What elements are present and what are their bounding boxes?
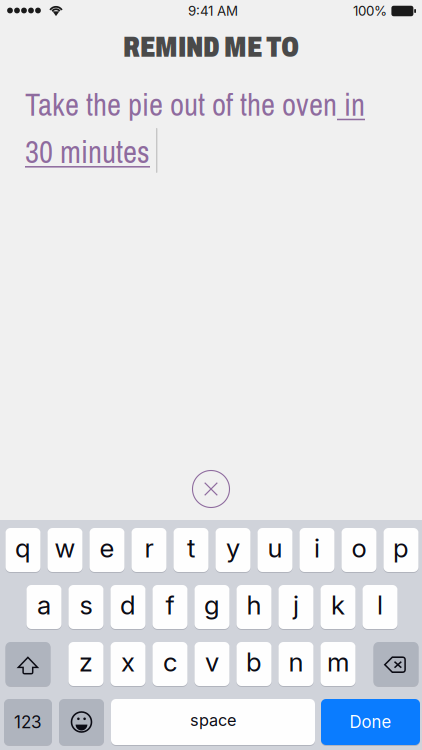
button[interactable]: Numbers xyxy=(4,699,52,745)
button[interactable]: q xyxy=(5,528,40,572)
button[interactable]: u xyxy=(257,528,292,572)
button[interactable]: g xyxy=(194,585,229,629)
staticText: m xyxy=(327,646,349,678)
button[interactable]: a xyxy=(26,585,61,629)
staticText: x xyxy=(121,646,135,678)
button[interactable]: Clear xyxy=(189,467,233,511)
staticText: t xyxy=(187,532,195,564)
staticText: REMIND ME TO xyxy=(123,31,299,63)
button[interactable]: o xyxy=(341,528,376,572)
staticText: 123 xyxy=(14,712,42,732)
button[interactable]: w xyxy=(47,528,82,572)
button[interactable]: z xyxy=(68,642,103,686)
staticText: y xyxy=(226,532,240,564)
button[interactable]: k xyxy=(320,585,355,629)
staticText: d xyxy=(120,589,136,621)
staticText: s xyxy=(79,589,92,621)
button[interactable]: l xyxy=(362,585,397,629)
staticText: l xyxy=(377,589,383,621)
staticText: o xyxy=(351,532,366,564)
button[interactable]: Emoji xyxy=(59,699,104,745)
staticText: 9:41 AM xyxy=(188,3,238,19)
button[interactable]: n xyxy=(278,642,313,686)
button[interactable]: Done xyxy=(321,699,420,745)
staticText: u xyxy=(267,532,282,564)
staticText: space xyxy=(190,710,236,730)
staticText: n xyxy=(288,646,303,678)
staticText: v xyxy=(205,646,219,678)
staticText: r xyxy=(144,532,153,564)
staticText: 100% xyxy=(353,3,387,19)
button[interactable]: h xyxy=(236,585,271,629)
button[interactable]: b xyxy=(236,642,271,686)
button[interactable]: m xyxy=(320,642,355,686)
staticText: p xyxy=(393,532,409,564)
button[interactable]: r xyxy=(131,528,166,572)
staticText: j xyxy=(293,589,299,621)
button[interactable]: f xyxy=(152,585,187,629)
staticText: k xyxy=(331,589,345,621)
staticText: q xyxy=(15,532,31,564)
button[interactable]: y xyxy=(215,528,250,572)
button[interactable]: s xyxy=(68,585,103,629)
button[interactable]: j xyxy=(278,585,313,629)
button[interactable]: p xyxy=(383,528,418,572)
staticText: w xyxy=(54,532,75,564)
button[interactable]: space xyxy=(111,699,315,745)
staticText: a xyxy=(37,589,51,621)
staticText: Done xyxy=(349,712,391,732)
staticText: i xyxy=(314,532,320,564)
button[interactable]: e xyxy=(89,528,124,572)
button[interactable]: d xyxy=(110,585,145,629)
button[interactable]: c xyxy=(152,642,187,686)
staticText: g xyxy=(204,589,220,621)
button[interactable]: x xyxy=(110,642,145,686)
staticText: Take the pie out of the oven in 30 minut… xyxy=(25,84,365,172)
button[interactable]: Shift xyxy=(5,642,50,686)
staticText: z xyxy=(79,646,93,678)
button[interactable]: t xyxy=(173,528,208,572)
staticText: c xyxy=(163,646,177,678)
button[interactable]: i xyxy=(299,528,334,572)
staticText: b xyxy=(246,646,262,678)
staticText: h xyxy=(246,589,261,621)
staticText: f xyxy=(165,589,174,621)
button[interactable]: Delete xyxy=(373,642,418,686)
staticText: e xyxy=(99,532,114,564)
button[interactable]: v xyxy=(194,642,229,686)
